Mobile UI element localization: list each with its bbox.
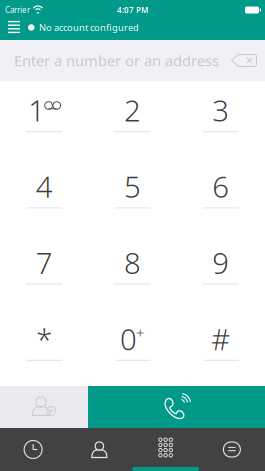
button[interactable]: 1 [0,81,88,157]
staticText: Enter a number or an address [14,51,219,70]
button[interactable]: 3 [177,81,265,157]
staticText: 3 [212,90,229,129]
staticText: 2 [124,90,141,129]
staticText: # [211,319,230,358]
staticText: 1 [28,90,45,129]
staticText: + [136,323,144,342]
staticText: 7 [36,243,53,282]
button[interactable]: 9 [177,233,265,310]
staticText: Carrier [5,5,30,15]
button[interactable]: 2 [88,81,177,157]
button[interactable]: Delete [227,45,261,75]
button[interactable]: # [177,310,265,386]
button[interactable]: * [0,310,88,386]
staticText: No account configured [39,21,139,34]
button[interactable]: Menu [0,20,28,40]
button[interactable]: Contacts [66,428,132,471]
button[interactable]: 5 [88,157,177,233]
staticText: 0 [120,319,137,358]
button[interactable]: 7 [0,233,88,310]
staticText: * [36,319,52,358]
staticText: 4 [36,167,53,206]
button[interactable]: 0 [88,310,177,386]
staticText: 5 [124,167,141,206]
button[interactable]: 6 [177,157,265,233]
staticText: 4:07 PM [117,5,148,15]
button[interactable]: Keypad [132,428,199,471]
button[interactable]: History [0,428,66,471]
staticText: 6 [212,167,229,206]
button[interactable]: 4 [0,157,88,233]
button[interactable]: Chat [199,428,265,471]
staticText: 8 [124,243,141,282]
button[interactable]: Call [88,386,265,428]
button[interactable]: Add contact [0,386,88,428]
staticText: 9 [212,243,229,282]
button[interactable]: 8 [88,233,177,310]
